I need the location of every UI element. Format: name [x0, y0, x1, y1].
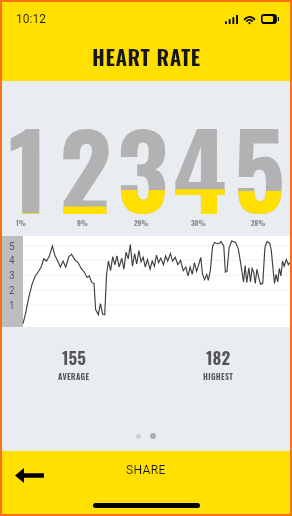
staticText: 29%	[134, 218, 149, 228]
button[interactable]: SHARE	[106, 457, 186, 483]
staticText: 5	[9, 241, 15, 253]
staticText: 1	[9, 300, 15, 312]
staticText: 3	[9, 270, 15, 282]
staticText: 10:12	[16, 12, 46, 26]
staticText: 2	[9, 285, 15, 297]
staticText: AVERAGE	[58, 370, 90, 382]
staticText: 9%	[77, 218, 88, 228]
staticText: 30%	[191, 218, 206, 228]
staticText: HIGHEST	[203, 370, 234, 382]
staticText: 28%	[251, 218, 266, 228]
staticText: 182	[206, 345, 231, 370]
staticText: 155	[62, 345, 86, 370]
staticText: 1%	[16, 218, 26, 228]
button[interactable]: 182	[146, 345, 290, 382]
staticText: SHARE	[126, 463, 166, 477]
button[interactable]: 155	[2, 345, 146, 382]
button[interactable]: Back	[6, 452, 52, 498]
staticText: 4	[9, 255, 15, 267]
staticText: HEART RATE	[92, 41, 201, 72]
